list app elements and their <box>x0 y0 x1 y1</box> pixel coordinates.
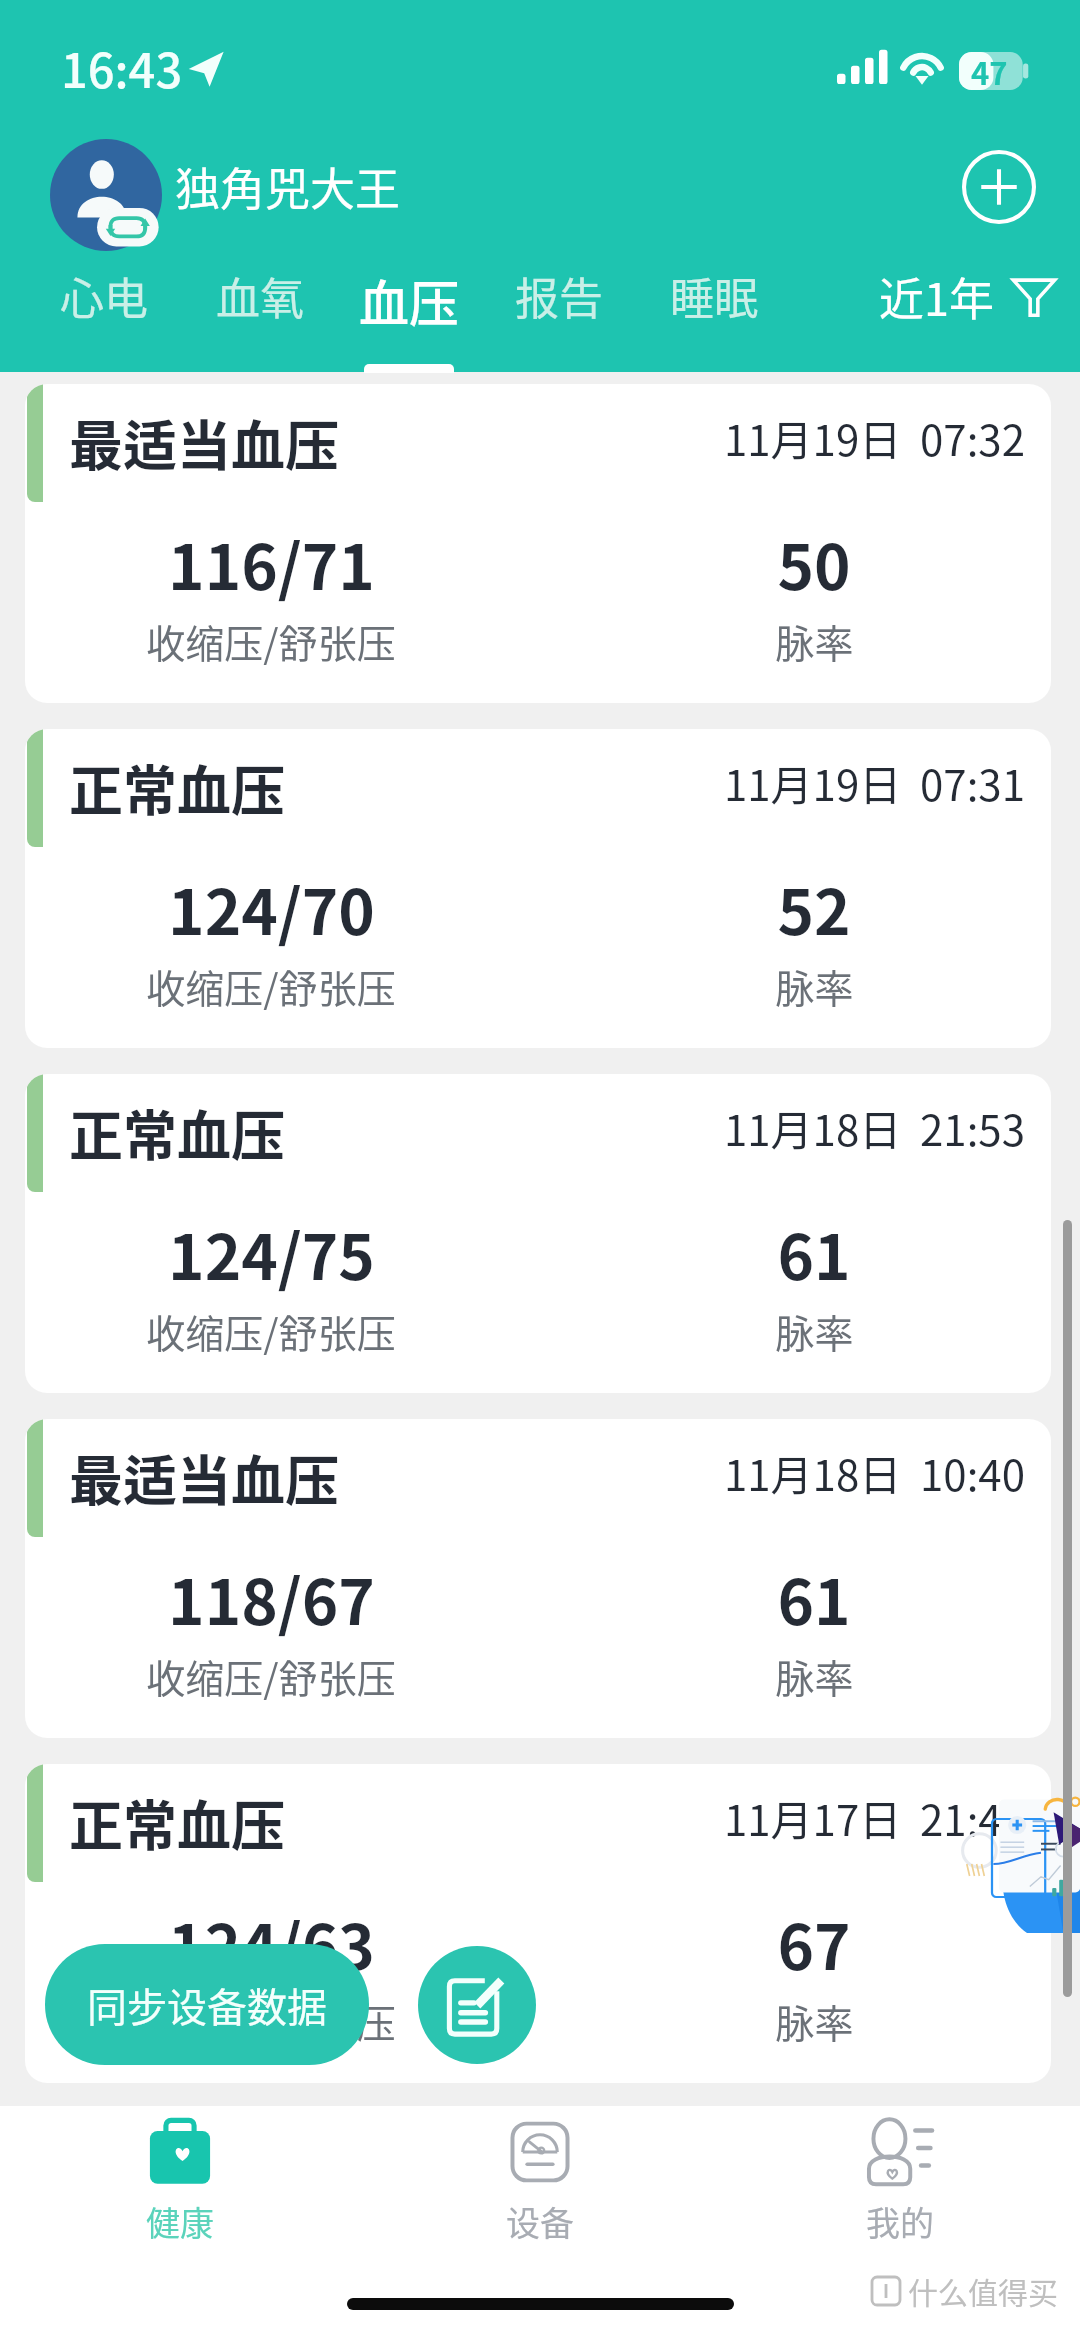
staticText: 16:43 <box>61 33 183 101</box>
staticText: 124/63 <box>168 1898 375 1988</box>
staticText: 118/67 <box>168 1553 375 1643</box>
button[interactable]: 近1年 <box>879 264 1058 329</box>
button[interactable]: 记录 <box>418 1946 536 2064</box>
button[interactable]: 心电 <box>60 264 148 328</box>
staticText: 独角兕大王 <box>175 154 401 219</box>
staticText: 健康 <box>146 2197 214 2246</box>
button[interactable]: 我的 <box>720 2106 1080 2266</box>
staticText: 正常血压 <box>69 1783 285 1861</box>
staticText: 最适当血压 <box>69 403 339 481</box>
staticText: 11月18日 21:53 <box>724 1097 1025 1158</box>
button[interactable]: 睡眠 <box>670 264 758 328</box>
button[interactable]: 正常血压 <box>25 729 1051 1048</box>
button[interactable]: 设备 <box>360 2106 720 2266</box>
staticText: 收缩压/舒张压 <box>146 958 396 1014</box>
staticText: 收缩压/舒张压 <box>146 1648 396 1704</box>
staticText: 脉率 <box>775 613 854 669</box>
staticText: 收缩压/舒张压 <box>146 613 396 669</box>
staticText: 52 <box>777 863 851 953</box>
staticText: 血压 <box>359 264 459 336</box>
staticText: 脉率 <box>775 1993 854 2049</box>
button[interactable]: 添加 <box>962 150 1036 224</box>
staticText: 124/75 <box>168 1208 375 1298</box>
staticText: 67 <box>777 1898 851 1988</box>
staticText: 脉率 <box>775 1648 854 1704</box>
button[interactable]: 最适当血压 <box>25 384 1051 703</box>
staticText: 收缩压/舒张压 <box>146 1303 396 1359</box>
staticText: 124/70 <box>168 863 375 953</box>
button[interactable]: 正常血压 <box>25 1074 1051 1393</box>
staticText: 61 <box>777 1208 851 1298</box>
staticText: 11月17日 21:47 <box>724 1787 1025 1848</box>
staticText: 11月19日 07:31 <box>724 752 1025 813</box>
staticText: 脉率 <box>775 958 854 1014</box>
button[interactable]: 血压 <box>359 264 459 373</box>
button[interactable]: 正常血压 <box>25 1764 1051 2083</box>
button[interactable]: 血氧 <box>216 264 304 328</box>
staticText: 116/71 <box>168 518 375 608</box>
staticText: 脉率 <box>775 1303 854 1359</box>
staticText: 心电 <box>60 264 148 328</box>
staticText: 11月18日 10:40 <box>724 1442 1025 1503</box>
staticText: 我的 <box>866 2197 934 2246</box>
staticText: 睡眠 <box>670 264 758 328</box>
button[interactable]: 同步设备数据 <box>45 1944 369 2065</box>
button[interactable]: 报告 <box>515 264 603 328</box>
button[interactable]: 切换用户头像 <box>50 139 162 251</box>
staticText: 50 <box>777 518 851 608</box>
staticText: 什么值得买 <box>908 2269 1058 2312</box>
staticText: 收缩压/舒张压 <box>146 1993 396 2049</box>
staticText: 正常血压 <box>69 1093 285 1171</box>
staticText: 61 <box>777 1553 851 1643</box>
staticText: 正常血压 <box>69 748 285 826</box>
staticText: 设备 <box>506 2197 574 2246</box>
staticText: 同步设备数据 <box>87 1976 327 2034</box>
button[interactable]: 健康 <box>0 2106 360 2266</box>
staticText: 47 <box>971 49 1008 94</box>
staticText: 近1年 <box>879 264 994 329</box>
staticText: 最适当血压 <box>69 1438 339 1516</box>
button[interactable]: 最适当血压 <box>25 1419 1051 1738</box>
staticText: 11月19日 07:32 <box>724 407 1025 468</box>
staticText: 报告 <box>515 264 603 328</box>
staticText: 血氧 <box>216 264 304 328</box>
